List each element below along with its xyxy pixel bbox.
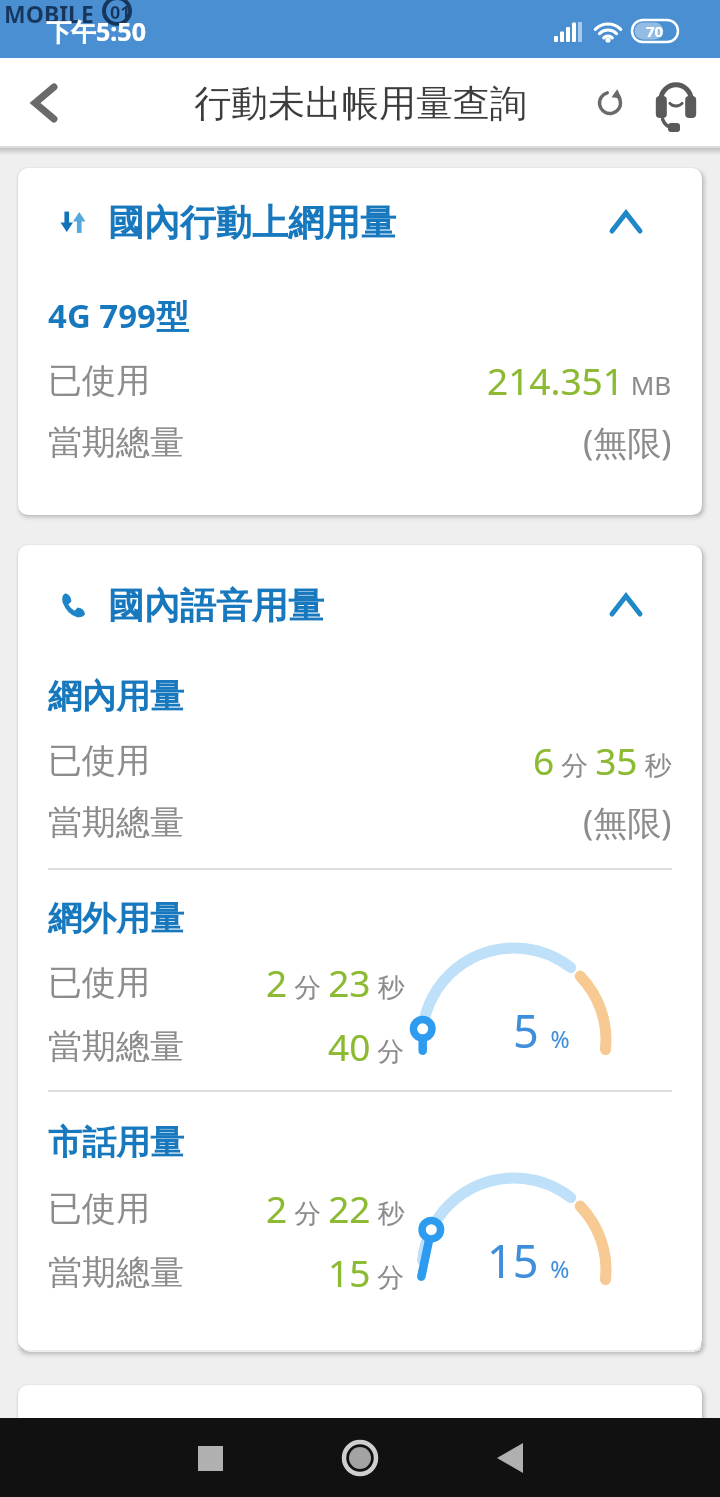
- staticText: 行動未出帳用量查詢: [194, 80, 527, 127]
- staticText: 6 分 35 秒: [533, 735, 672, 785]
- button[interactable]: [20, 79, 68, 127]
- staticText: 網內用量: [48, 675, 184, 718]
- button[interactable]: [588, 81, 632, 125]
- staticText: MOBILE: [4, 0, 94, 29]
- staticText: 當期總量: [48, 1251, 184, 1294]
- button[interactable]: [486, 1434, 534, 1482]
- button[interactable]: [186, 1434, 234, 1482]
- staticText: 70: [646, 21, 664, 41]
- button[interactable]: 國內語音用量: [18, 579, 702, 631]
- staticText: 01: [110, 0, 131, 25]
- button[interactable]: [650, 77, 702, 129]
- button[interactable]: [336, 1434, 384, 1482]
- staticText: 2 分 23 秒: [266, 957, 405, 1007]
- staticText: 當期總量: [48, 421, 184, 464]
- staticText: 15 分: [328, 1247, 405, 1297]
- staticText: 已使用: [48, 739, 150, 782]
- button[interactable]: 國內行動上網用量: [18, 196, 702, 248]
- staticText: 4G 799型: [48, 293, 189, 338]
- staticText: 已使用: [48, 961, 150, 1004]
- staticText: 國內行動上網用量: [108, 200, 396, 245]
- staticText: 已使用: [48, 359, 150, 402]
- staticText: (無限): [583, 419, 672, 465]
- staticText: 下午5:50: [46, 14, 146, 48]
- staticText: 網外用量: [48, 897, 184, 940]
- staticText: 214.351 MB: [487, 355, 672, 405]
- staticText: 已使用: [48, 1187, 150, 1230]
- staticText: 國內語音用量: [108, 583, 324, 628]
- staticText: 15 %: [487, 1230, 570, 1291]
- staticText: (無限): [583, 799, 672, 845]
- staticText: 當期總量: [48, 801, 184, 844]
- staticText: 2 分 22 秒: [266, 1183, 405, 1233]
- staticText: 5 %: [513, 1000, 570, 1061]
- staticText: 當期總量: [48, 1025, 184, 1068]
- staticText: 40 分: [328, 1021, 405, 1071]
- staticText: 市話用量: [48, 1121, 184, 1164]
